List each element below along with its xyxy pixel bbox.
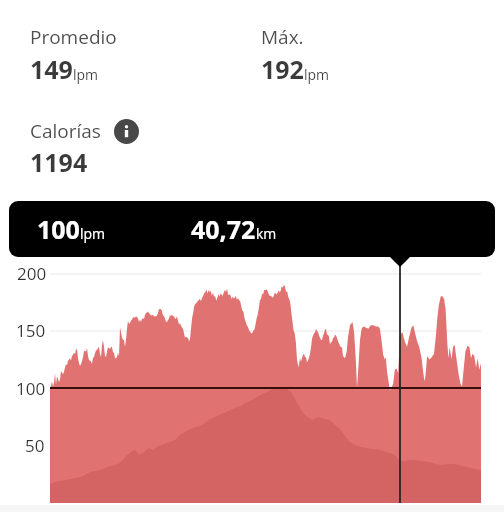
staticText: lpm xyxy=(304,65,330,84)
staticText: 149 xyxy=(30,52,73,86)
staticText: lpm xyxy=(80,224,106,243)
staticText: 1194 xyxy=(30,145,88,179)
staticText: 150 xyxy=(16,319,46,342)
staticText: lpm xyxy=(73,65,99,84)
staticText: Promedio xyxy=(30,24,117,50)
staticText: Calorías xyxy=(30,118,101,144)
staticText: km xyxy=(256,224,277,243)
staticText: 200 xyxy=(17,262,47,285)
staticText: 50 xyxy=(25,434,45,457)
staticText: Máx. xyxy=(261,24,304,50)
staticText: 100 xyxy=(16,377,46,400)
staticText: 40,72 xyxy=(191,212,256,246)
staticText: 192 xyxy=(261,52,304,86)
staticText: 100 xyxy=(37,212,80,246)
button[interactable]: 100 xyxy=(9,201,495,257)
button[interactable]: Información sobre calorías xyxy=(114,119,139,144)
